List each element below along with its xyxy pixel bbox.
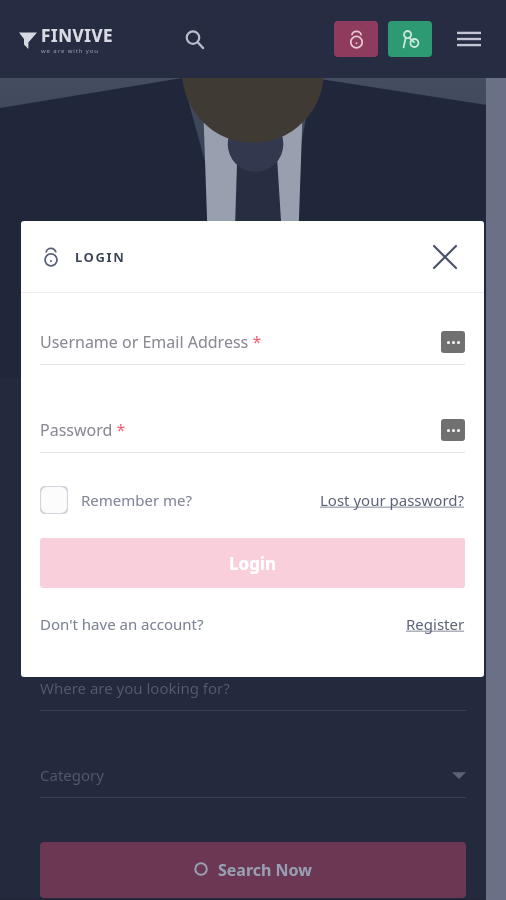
staticText: Register [406,614,465,634]
button[interactable]: Login [334,21,378,57]
button[interactable]: Lost your password? [320,490,465,510]
staticText: FINVIVE [41,24,114,47]
button[interactable]: Register [406,614,465,634]
staticText: Remember me? [81,490,193,510]
button[interactable]: Search Now [40,842,466,898]
staticText: Search Now [218,859,312,881]
button[interactable]: Login [40,538,465,588]
button[interactable]: Remember me? [40,486,193,514]
button[interactable]: Close [426,238,464,276]
button[interactable]: Username or Email Address * [40,331,465,353]
button[interactable]: Menu [450,20,488,58]
button[interactable]: FINVIVE [18,24,114,55]
other: More options [441,331,465,353]
button[interactable]: Password * [40,419,465,441]
button[interactable]: Search [174,19,214,59]
button[interactable]: Category [40,765,466,785]
other: More options [441,419,465,441]
staticText: Category [40,765,452,785]
staticText: Don't have an account? [40,614,204,634]
staticText: we are with you [41,47,99,55]
staticText: Login [229,552,277,575]
staticText: Lost your password? [320,490,465,510]
staticText: Password * [40,419,126,441]
staticText: Username or Email Address * [40,331,262,353]
button[interactable]: Register [388,21,432,57]
staticText: Where are you looking for? [40,678,230,698]
staticText: LOGIN [75,248,126,266]
